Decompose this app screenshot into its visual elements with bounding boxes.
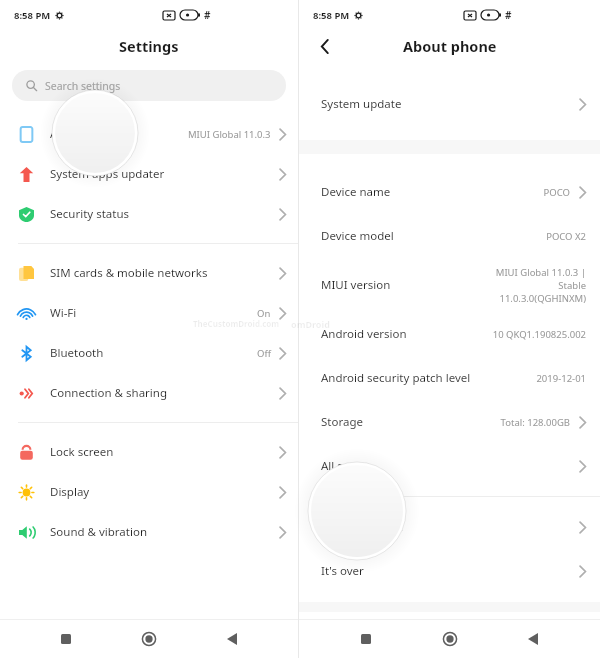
button[interactable]: All specs — [299, 444, 600, 488]
staticText: Sound & vibration — [50, 524, 147, 540]
button[interactable]: System update — [299, 82, 600, 126]
staticText: MIUI version — [321, 277, 391, 293]
button[interactable]: Back — [215, 622, 249, 656]
staticText: SIM cards & mobile networks — [50, 265, 208, 281]
button[interactable]: Wi-Fi — [0, 293, 298, 333]
staticText: It's over — [321, 563, 364, 579]
staticText: Storage — [321, 414, 363, 430]
staticText: About phone — [50, 126, 121, 142]
staticText: Total: 128.00GB — [500, 416, 570, 429]
staticText: Device name — [321, 184, 391, 200]
staticText: System update — [321, 96, 402, 112]
staticText: 8:58 PM — [14, 9, 51, 22]
staticText: Android security patch level — [321, 370, 471, 386]
button[interactable]: It's over — [299, 549, 600, 593]
staticText: Settings — [119, 36, 179, 56]
button[interactable]: Home — [433, 622, 467, 656]
staticText: 8:58 PM — [313, 9, 350, 22]
button[interactable]: System apps updater — [0, 154, 298, 194]
button[interactable]: Storage — [299, 400, 600, 444]
staticText: MIUI Global 11.0.3 — [188, 128, 271, 141]
button[interactable]: SIM cards & mobile networks — [0, 253, 298, 293]
staticText: Connection & sharing — [50, 385, 167, 401]
button[interactable]: Back — [313, 34, 337, 58]
staticText: System apps updater — [50, 166, 165, 182]
button[interactable]: Connection & sharing — [0, 373, 298, 413]
staticText: Wi-Fi — [50, 305, 77, 321]
button[interactable]: Sound & vibration — [0, 512, 298, 552]
button[interactable]: Home — [132, 622, 166, 656]
staticText: All specs — [321, 458, 368, 474]
button[interactable]: Security status — [0, 194, 298, 234]
button[interactable]: Bluetooth — [0, 333, 298, 373]
staticText: # — [505, 8, 512, 22]
staticText: Display — [50, 484, 90, 500]
staticText: Bluetooth — [50, 345, 104, 361]
staticText: On — [257, 307, 271, 320]
button[interactable]: Android version — [299, 312, 600, 356]
button[interactable]: Back — [516, 622, 550, 656]
button[interactable]: Search settings — [12, 70, 286, 101]
staticText: TheCustomDroid.com — [193, 318, 280, 329]
staticText: Off — [257, 347, 271, 360]
staticText: # — [204, 8, 211, 22]
button[interactable]: MIUI version — [299, 258, 600, 312]
staticText: 2019-12-01 — [536, 372, 586, 385]
staticText: Security status — [50, 206, 130, 222]
staticText: Device model — [321, 228, 394, 244]
staticText: Search settings — [45, 79, 121, 93]
button[interactable]: Backup & reset — [299, 505, 600, 549]
staticText: POCO X2 — [546, 230, 586, 243]
button[interactable]: Display — [0, 472, 298, 512]
staticText: POCO — [543, 186, 570, 199]
staticText: MIUI Global 11.0.3 | Stable 11.0.3.0(QGH… — [495, 266, 586, 305]
staticText: Android version — [321, 326, 407, 342]
button[interactable]: Android security patch level — [299, 356, 600, 400]
button[interactable]: Device name — [299, 170, 600, 214]
staticText: Lock screen — [50, 444, 114, 460]
button[interactable]: Device model — [299, 214, 600, 258]
staticText: omDroid — [291, 318, 330, 330]
button[interactable]: About phone — [0, 114, 298, 154]
staticText: About phone — [403, 36, 497, 56]
button[interactable]: Lock screen — [0, 432, 298, 472]
staticText: 10 QKQ1.190825.002 — [492, 328, 586, 341]
button[interactable]: Recents — [49, 622, 83, 656]
button[interactable]: Recents — [349, 622, 383, 656]
